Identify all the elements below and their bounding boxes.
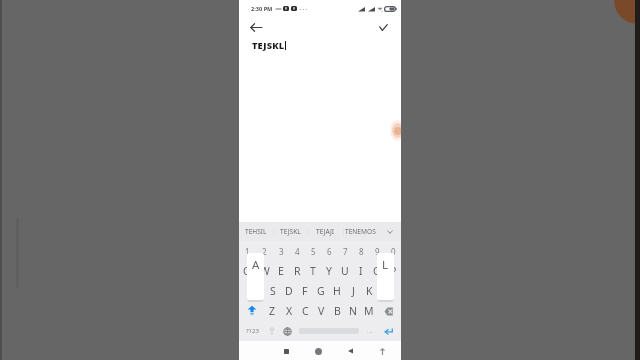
- button[interactable]: N: [345, 301, 361, 321]
- staticText: H: [333, 284, 341, 298]
- staticText: 1: [245, 246, 250, 257]
- staticText: L: [382, 257, 389, 273]
- staticText: F: [302, 284, 308, 298]
- button[interactable]: 3: [273, 241, 289, 261]
- button[interactable]: F: [297, 281, 313, 301]
- button[interactable]: U: [337, 261, 353, 281]
- button[interactable]: H: [329, 281, 345, 301]
- button[interactable]: K: [361, 281, 377, 301]
- button[interactable]: TEJAJI: [308, 222, 343, 241]
- staticText: T: [310, 264, 316, 278]
- button[interactable]: S: [264, 281, 281, 301]
- button[interactable]: Z: [264, 301, 281, 321]
- button[interactable]: Enter: [376, 321, 401, 341]
- staticText: A: [252, 257, 260, 273]
- staticText: J: [352, 284, 355, 298]
- staticText: B: [334, 304, 341, 318]
- staticText: R: [294, 264, 301, 278]
- button[interactable]: D: [281, 281, 297, 301]
- staticText: . ,: [367, 327, 372, 335]
- staticText: 4: [295, 246, 300, 257]
- staticText: 0: [391, 246, 396, 257]
- other: Backspace: [384, 307, 394, 316]
- button[interactable]: 5: [305, 241, 321, 261]
- staticText: Z: [269, 304, 276, 318]
- staticText: 7: [343, 246, 348, 257]
- button[interactable]: P: [385, 261, 401, 281]
- button[interactable]: Change language: [278, 321, 296, 341]
- button[interactable]: I: [353, 261, 369, 281]
- button[interactable]: G: [313, 281, 329, 301]
- button[interactable]: Q: [239, 261, 256, 281]
- button[interactable]: L: [377, 281, 393, 301]
- button[interactable]: Y: [321, 261, 337, 281]
- button[interactable]: C: [297, 301, 313, 321]
- button[interactable]: 1: [239, 241, 256, 261]
- button[interactable]: TEHSIL: [239, 222, 273, 241]
- other: Shift: [247, 305, 257, 317]
- button[interactable]: Emoji: [265, 321, 278, 341]
- staticText: I: [359, 264, 363, 278]
- button[interactable]: Recent apps: [279, 344, 293, 358]
- button[interactable]: O: [369, 261, 385, 281]
- button[interactable]: ?123: [239, 321, 265, 341]
- staticText: Q: [243, 264, 252, 278]
- button[interactable]: V: [313, 301, 329, 321]
- staticText: ?123: [246, 327, 259, 335]
- staticText: TEJSKL: [280, 227, 301, 236]
- button[interactable]: 0: [385, 241, 401, 261]
- staticText: P: [390, 264, 397, 278]
- button[interactable]: B: [329, 301, 345, 321]
- button[interactable]: R: [289, 261, 305, 281]
- staticText: TEHSIL: [245, 227, 267, 236]
- button[interactable]: TEJSKL: [273, 222, 308, 241]
- button[interactable]: Hide keyboard: [375, 344, 389, 358]
- button[interactable]: TENEMOS: [343, 222, 378, 241]
- staticText: TEJAJI: [316, 227, 335, 236]
- staticText: E: [278, 264, 284, 278]
- staticText: TENEMOS: [345, 227, 376, 236]
- staticText: O: [373, 264, 382, 278]
- staticText: 2:30 PM: [251, 5, 273, 13]
- staticText: 8: [359, 246, 364, 257]
- button[interactable]: 4: [289, 241, 305, 261]
- staticText: 9: [375, 246, 380, 257]
- staticText: 2: [262, 246, 267, 257]
- button[interactable]: Shift: [239, 301, 264, 321]
- button[interactable]: More suggestions: [378, 222, 401, 241]
- staticText: U: [341, 264, 349, 278]
- button[interactable]: Back: [343, 344, 357, 358]
- staticText: G: [317, 284, 325, 298]
- button[interactable]: J: [345, 281, 361, 301]
- staticText: D: [285, 284, 293, 298]
- staticText: C: [302, 304, 309, 318]
- button[interactable]: W: [256, 261, 273, 281]
- button[interactable]: A: [247, 281, 264, 301]
- button[interactable]: 6: [321, 241, 337, 261]
- staticText: 3: [279, 246, 284, 257]
- button[interactable]: Backspace: [377, 301, 401, 321]
- staticText: N: [349, 304, 357, 318]
- button[interactable]: M: [361, 301, 377, 321]
- staticText: S: [270, 284, 276, 298]
- button[interactable]: T: [305, 261, 321, 281]
- staticText: 6: [327, 246, 332, 257]
- button[interactable]: 7: [337, 241, 353, 261]
- button[interactable]: 9: [369, 241, 385, 261]
- staticText: K: [366, 284, 373, 298]
- staticText: 5: [311, 246, 316, 257]
- button[interactable]: E: [273, 261, 289, 281]
- button[interactable]: Save: [374, 18, 392, 36]
- staticText: M: [364, 304, 374, 318]
- staticText: X: [286, 304, 293, 318]
- staticText: V: [318, 304, 325, 318]
- button[interactable]: Home: [311, 344, 325, 358]
- button[interactable]: Navigate up: [247, 18, 265, 36]
- button[interactable]: 2: [256, 241, 273, 261]
- button[interactable]: X: [281, 301, 297, 321]
- button[interactable]: 8: [353, 241, 369, 261]
